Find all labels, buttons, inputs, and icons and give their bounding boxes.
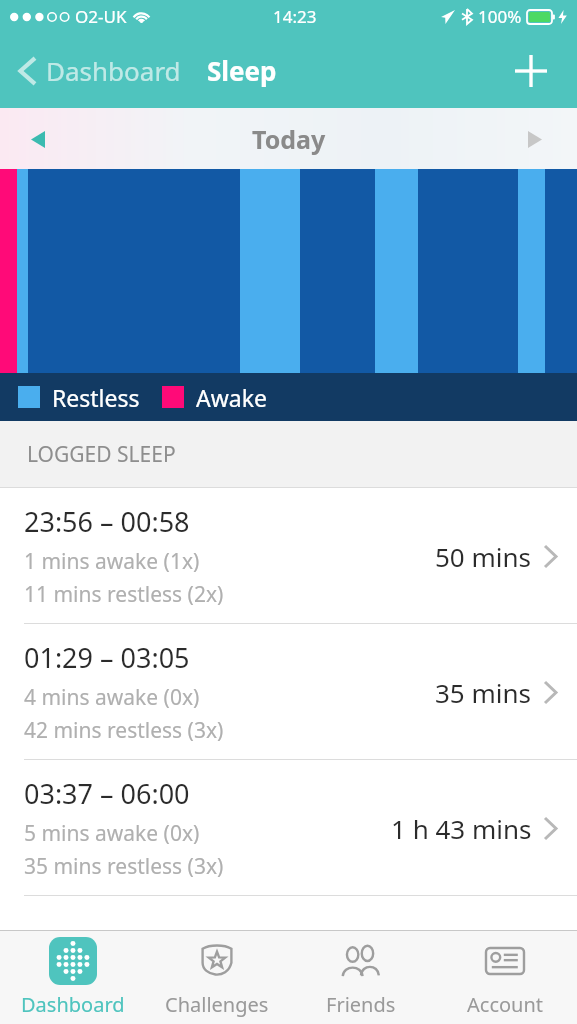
staticText: Awake [196,382,267,413]
staticText: 35 mins [435,675,532,710]
staticText: 11 mins restless (2x) [24,580,224,609]
staticText: Challenges [165,991,269,1018]
button[interactable]: Next day [515,119,555,159]
button[interactable]: Dashboard [14,45,185,96]
staticText: 1 h 43 mins [391,811,532,846]
staticText: Account [467,991,544,1018]
button[interactable]: Account [433,931,577,1024]
button[interactable]: 01:29 – 03:05 [0,624,577,760]
button[interactable]: 03:37 – 06:00 [0,760,577,896]
button[interactable]: Dashboard [0,931,145,1024]
staticText: 1 mins awake (1x) [24,547,200,576]
staticText: 14:23 [273,5,317,28]
staticText: Restless [52,382,140,413]
staticText: 01:29 – 03:05 [24,639,190,676]
button[interactable]: Friends [289,931,433,1024]
staticText: 4 mins awake (0x) [24,683,200,712]
staticText: Dashboard [46,53,181,88]
staticText: 23:56 – 00:58 [24,503,190,540]
staticText: Today [252,122,326,156]
button[interactable]: Add sleep log [507,47,555,95]
button[interactable]: Challenges [145,931,289,1024]
button[interactable]: Previous day [18,119,58,159]
staticText: Dashboard [21,991,125,1018]
staticText: O2-UK [75,5,127,28]
staticText: 50 mins [435,539,532,574]
staticText: 5 mins awake (0x) [24,819,200,848]
staticText: 35 mins restless (3x) [24,852,224,881]
staticText: 100% [478,5,522,28]
staticText: 42 mins restless (3x) [24,716,224,745]
staticText: 03:37 – 06:00 [24,775,190,812]
button[interactable]: 23:56 – 00:58 [0,488,577,624]
staticText: Friends [326,991,396,1018]
staticText: LOGGED SLEEP [27,440,176,469]
staticText: Sleep [207,53,277,88]
